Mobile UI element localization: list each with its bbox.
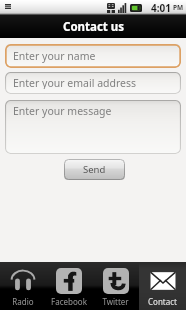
button[interactable]: Enter your email address <box>5 72 181 94</box>
button[interactable]: Enter your name <box>5 44 181 68</box>
staticText: Contact <box>148 296 177 307</box>
staticText: Enter your name <box>13 49 96 63</box>
staticText: Send <box>83 163 106 176</box>
staticText: Facebook <box>51 296 87 307</box>
staticText: Twitter <box>102 296 129 307</box>
other: Contact <box>150 268 176 294</box>
button[interactable]: Send <box>64 159 125 180</box>
other: Twitter <box>103 268 129 294</box>
other: Facebook <box>56 268 82 294</box>
staticText: PM <box>173 3 184 12</box>
other: Radio <box>10 268 36 294</box>
button[interactable]: Facebook <box>46 262 92 310</box>
button[interactable]: Enter your message <box>5 100 181 154</box>
button[interactable]: Twitter <box>92 262 139 310</box>
staticText: 4:01 <box>151 1 171 15</box>
button[interactable]: Radio <box>0 262 46 310</box>
button[interactable]: Contact <box>139 262 186 310</box>
staticText: Contact us <box>63 19 125 35</box>
staticText: Enter your email address <box>13 76 137 89</box>
staticText: Enter your message <box>13 104 112 118</box>
staticText: Radio <box>12 296 34 307</box>
